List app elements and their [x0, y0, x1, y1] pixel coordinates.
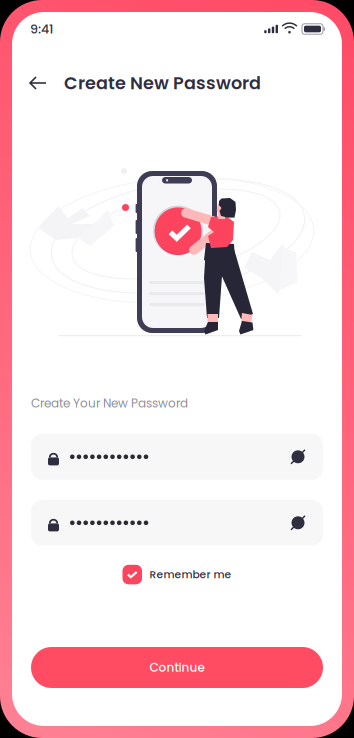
staticText: Create New Password	[64, 71, 261, 95]
staticText: Continue	[149, 659, 204, 676]
button[interactable]: Show password	[290, 515, 306, 531]
button[interactable]: Remember me	[122, 565, 231, 584]
button[interactable]: Back	[23, 70, 53, 96]
staticText: Remember me	[149, 567, 231, 582]
staticText: Create Your New Password	[31, 395, 188, 412]
button[interactable]: Continue	[31, 647, 323, 688]
staticText: 9:41	[30, 20, 53, 38]
button[interactable]: Show password	[290, 449, 306, 465]
